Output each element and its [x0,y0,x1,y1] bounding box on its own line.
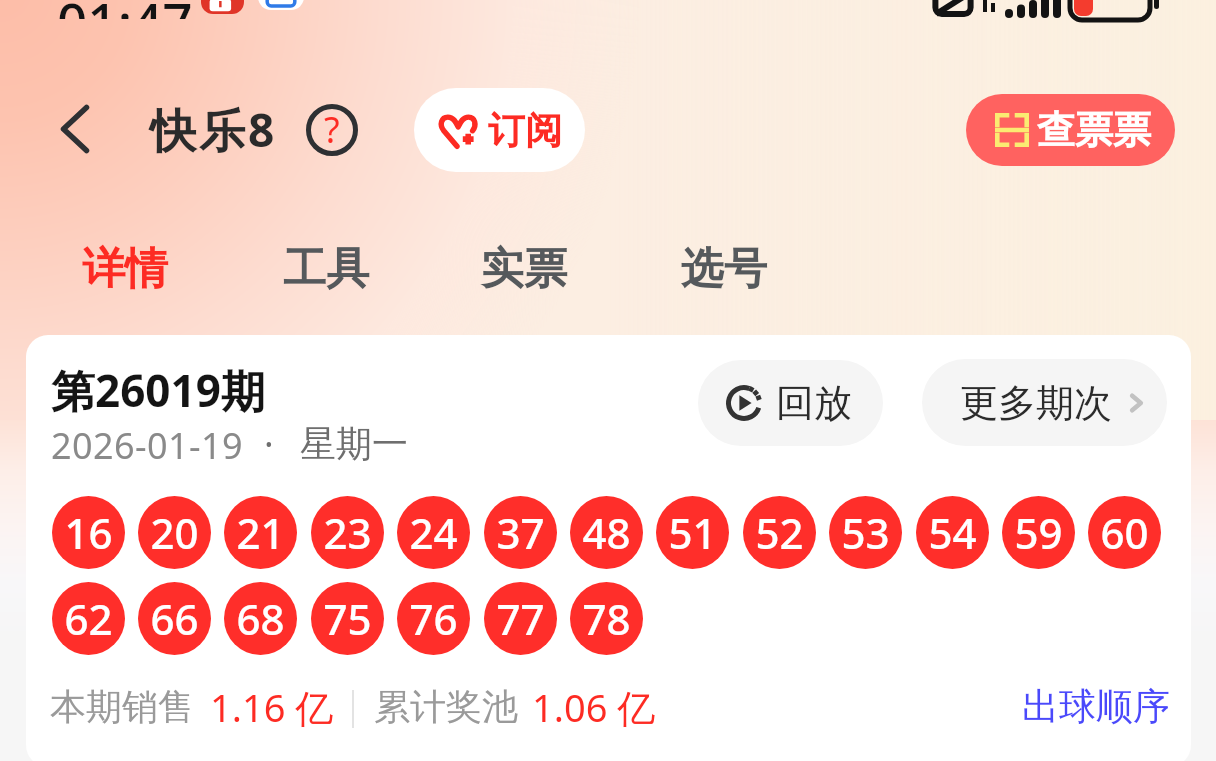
staticText: 20 [150,504,199,561]
button[interactable]: 订阅 [414,88,585,172]
staticText: 48 [582,504,631,561]
staticText: ? [324,105,340,154]
button[interactable]: 工具 [283,242,369,296]
staticText: 62 [64,590,113,647]
staticText: 66 [150,590,199,647]
staticText: 选号 [681,242,767,296]
staticText: 1.06 亿 [532,681,656,733]
staticText: 累计奖池 [374,684,518,729]
staticText: 01:47 [57,0,193,19]
staticText: · [264,419,274,468]
staticText: 快乐8 [150,98,278,161]
staticText: 回放 [776,379,852,427]
staticText: 77 [496,590,545,647]
staticText: 实票 [481,242,567,296]
button[interactable]: Back [44,96,104,156]
staticText: 2026-01-19 [51,421,243,470]
button[interactable]: Help [306,104,358,156]
button[interactable]: 实票 [481,242,567,296]
staticText: 订阅 [488,107,562,154]
staticText: 21 [236,504,285,561]
staticText: 星期一 [300,421,408,466]
staticText: 51 [668,504,717,561]
staticText: 第26019期 [51,360,265,420]
staticText: 查票票 [1037,106,1151,154]
staticText: 76 [409,590,458,647]
staticText: 53 [841,504,890,561]
button[interactable]: 详情 [82,242,168,296]
staticText: 1.16 亿 [210,681,334,733]
staticText: 出球顺序 [1022,683,1170,730]
staticText: 59 [1014,504,1063,561]
staticText: 23 [323,504,372,561]
button[interactable]: 回放 [698,360,883,446]
button[interactable]: 选号 [681,242,767,296]
button[interactable]: 出球顺序 [1022,683,1170,730]
staticText: 更多期次 [960,379,1112,427]
staticText: 52 [755,504,804,561]
staticText: 60 [1100,504,1149,561]
button[interactable]: 查票票 [966,94,1175,166]
button[interactable]: 更多期次 [922,359,1167,446]
staticText: 16 [64,504,113,561]
staticText: 37 [496,504,545,561]
staticText: 本期销售 [50,684,194,729]
staticText: 24 [409,504,458,561]
staticText: 详情 [82,242,168,296]
staticText: 54 [928,504,977,561]
staticText: 78 [582,590,631,647]
staticText: 68 [236,590,285,647]
staticText: 75 [323,590,372,647]
staticText: 工具 [283,242,369,296]
